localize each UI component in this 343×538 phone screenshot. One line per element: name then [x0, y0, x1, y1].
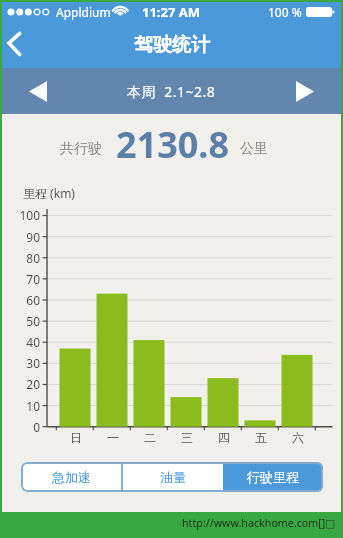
staticText: 五: [255, 430, 267, 445]
staticText: 二: [144, 430, 156, 445]
staticText: 0: [33, 419, 40, 435]
staticText: 油量: [160, 469, 186, 485]
staticText: 70: [26, 271, 40, 287]
staticText: 本周 2.1~2.8: [127, 82, 216, 101]
staticText: 40: [26, 334, 40, 350]
staticText: 60: [26, 292, 40, 308]
staticText: 日: [70, 430, 82, 445]
staticText: 共行驶: [60, 140, 102, 158]
button[interactable]: 油量: [123, 462, 223, 492]
staticText: 10: [26, 398, 40, 414]
staticText: 里程 (km): [23, 185, 75, 201]
button[interactable]: [18, 71, 58, 111]
staticText: 四: [218, 430, 230, 445]
staticText: 30: [26, 355, 40, 371]
staticText: 100: [19, 207, 40, 223]
staticText: 90: [26, 229, 40, 245]
staticText: 2130.8: [116, 120, 230, 169]
staticText: 六: [292, 430, 304, 445]
staticText: 20: [26, 376, 40, 392]
staticText: 11:27 AM: [142, 3, 201, 21]
staticText: 50: [26, 313, 40, 329]
staticText: Appldium: [56, 4, 111, 20]
staticText: 公里: [240, 140, 268, 158]
staticText: 80: [26, 250, 40, 266]
staticText: 三: [181, 430, 193, 445]
button[interactable]: 急加速: [21, 462, 121, 492]
button[interactable]: 行驶里程: [223, 462, 323, 492]
staticText: http://www.hackhome.com[]□: [182, 516, 336, 531]
staticText: 驾驶统计: [134, 33, 210, 57]
staticText: 急加速: [52, 469, 91, 485]
button[interactable]: [285, 71, 325, 111]
staticText: 100 %: [268, 4, 302, 20]
button[interactable]: [2, 22, 38, 68]
staticText: 一: [107, 430, 119, 445]
staticText: 行驶里程: [247, 469, 299, 485]
